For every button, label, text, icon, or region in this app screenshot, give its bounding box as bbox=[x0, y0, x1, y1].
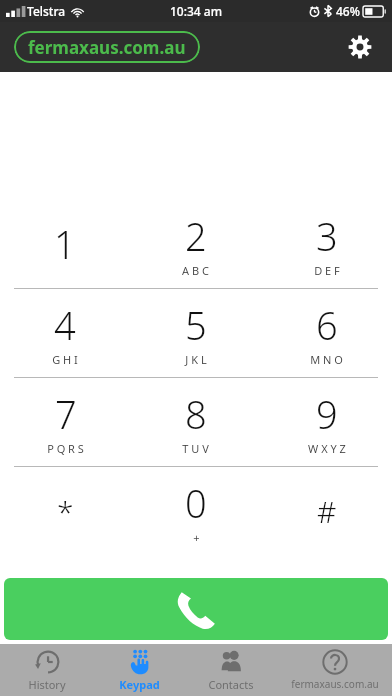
staticText: 6 bbox=[316, 299, 338, 351]
staticText: J K L bbox=[185, 352, 207, 367]
button[interactable]: fermaxaus.com.au bbox=[277, 644, 392, 696]
button[interactable]: Call bbox=[4, 578, 388, 640]
staticText: 8 bbox=[185, 388, 207, 440]
button[interactable]: 2 bbox=[130, 200, 261, 288]
staticText: Keypad bbox=[119, 677, 160, 692]
staticText: fermaxaus.com.au bbox=[28, 36, 186, 59]
button[interactable]: Contacts bbox=[185, 644, 277, 696]
staticText: D E F bbox=[314, 263, 340, 278]
button[interactable]: 6 bbox=[261, 289, 392, 377]
staticText: 2 bbox=[185, 210, 207, 262]
staticText: 0 bbox=[185, 477, 207, 529]
staticText: fermaxaus.com.au bbox=[291, 677, 379, 691]
button[interactable]: 0 bbox=[130, 467, 261, 555]
button[interactable]: 5 bbox=[130, 289, 261, 377]
staticText: G H I bbox=[52, 352, 78, 367]
button[interactable]: 9 bbox=[261, 378, 392, 466]
button[interactable]: 8 bbox=[130, 378, 261, 466]
staticText: + bbox=[193, 530, 200, 545]
staticText: 3 bbox=[316, 210, 338, 262]
button[interactable]: Settings bbox=[340, 27, 380, 67]
staticText: 4 bbox=[54, 299, 76, 351]
staticText: 7 bbox=[55, 388, 77, 440]
staticText: History bbox=[28, 677, 66, 692]
button[interactable]: 3 bbox=[261, 200, 392, 288]
button[interactable]: 4 bbox=[0, 289, 130, 377]
staticText: # bbox=[317, 491, 337, 532]
staticText: * bbox=[57, 491, 74, 532]
staticText: A B C bbox=[182, 263, 209, 278]
staticText: T U V bbox=[182, 441, 209, 456]
staticText: 10:34 am bbox=[170, 3, 223, 19]
staticText: 9 bbox=[316, 388, 338, 440]
button[interactable]: # bbox=[261, 467, 392, 555]
button[interactable]: Keypad bbox=[93, 644, 185, 696]
staticText: Telstra bbox=[27, 3, 66, 19]
staticText: P Q R S bbox=[47, 441, 84, 456]
button[interactable]: 7 bbox=[0, 378, 130, 466]
button[interactable]: * bbox=[0, 467, 130, 555]
button[interactable]: History bbox=[0, 644, 93, 696]
staticText: M N O bbox=[310, 352, 343, 367]
staticText: 1 bbox=[54, 218, 76, 270]
staticText: 5 bbox=[185, 299, 207, 351]
staticText: W X Y Z bbox=[308, 441, 346, 456]
button[interactable]: fermaxaus.com.au bbox=[14, 31, 200, 63]
button[interactable]: 1 bbox=[0, 200, 130, 288]
staticText: Contacts bbox=[208, 677, 254, 692]
staticText: 46% bbox=[336, 3, 360, 19]
